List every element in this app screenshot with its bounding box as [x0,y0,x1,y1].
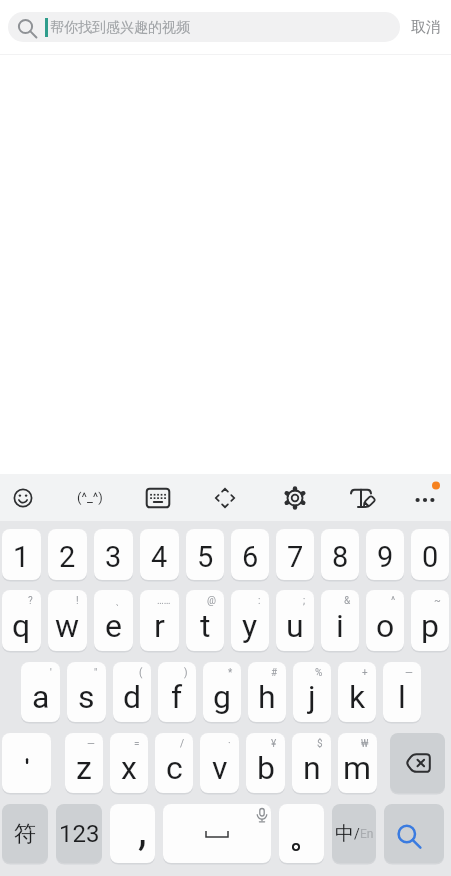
staticText: % [315,667,323,679]
button[interactable] [275,474,315,521]
button[interactable]: i [321,590,359,651]
staticText: 9 [377,540,394,574]
button[interactable]: k [338,662,376,722]
button[interactable]: , [110,804,155,863]
button[interactable]: 5 [186,529,224,580]
staticText: h [258,678,276,716]
button[interactable]: 中 [332,804,376,863]
button[interactable] [279,804,324,863]
button[interactable] [3,474,43,521]
button[interactable]: 4 [140,529,179,580]
button[interactable]: p [411,590,449,651]
staticText: ( [139,667,143,679]
staticText: 0 [422,540,439,574]
button[interactable] [138,474,178,521]
button[interactable]: s [67,662,106,722]
button[interactable] [205,474,245,521]
button[interactable]: w [48,590,87,651]
button[interactable] [403,474,447,521]
button[interactable]: e [94,590,133,651]
button[interactable]: a [21,662,60,722]
staticText: 、 [115,595,125,608]
button[interactable]: z [65,733,103,793]
button[interactable]: 3 [94,529,133,580]
staticText: g [213,678,231,716]
button[interactable]: h [248,662,286,722]
staticText: y [242,607,258,645]
staticText: ! [76,595,79,607]
staticText: s [78,678,95,716]
button[interactable] [2,733,51,793]
button[interactable]: 7 [276,529,314,580]
staticText: a [32,678,50,716]
staticText: x [121,749,137,787]
staticText: 符 [14,820,36,848]
button[interactable]: 帮你找到感兴趣的视频 [8,12,400,42]
staticText: u [286,607,304,645]
button[interactable]: c [155,733,193,793]
button[interactable]: 取消 [400,0,451,54]
staticText: e [105,607,122,645]
button[interactable]: g [203,662,241,722]
button[interactable]: y [231,590,269,651]
button[interactable] [390,733,445,793]
button[interactable]: 123 [56,804,102,863]
button[interactable]: 1 [2,529,41,580]
staticText: l [398,678,406,716]
staticText: p [421,607,439,645]
button[interactable]: o [366,590,404,651]
button[interactable] [163,804,271,863]
staticText: ₩ [361,738,369,750]
staticText: r [154,607,165,645]
button[interactable]: l [383,662,421,722]
staticText: $ [317,738,323,750]
staticText: — [405,667,413,679]
button[interactable]: 8 [321,529,359,580]
staticText: ¥ [271,738,277,750]
staticText: ' [50,667,52,679]
staticText: k [349,678,366,716]
staticText: ; [303,595,306,607]
staticText: En [360,827,374,841]
staticText: i [336,607,344,645]
button[interactable]: m [338,733,377,793]
button[interactable]: n [292,733,331,793]
staticText: 123 [59,820,100,848]
button[interactable]: x [110,733,148,793]
staticText: / [180,738,185,750]
staticText: * [228,667,233,679]
staticText: v [212,749,228,787]
staticText: 8 [332,540,349,574]
button[interactable]: j [293,662,331,722]
button[interactable]: 2 [48,529,87,580]
staticText: ) [184,667,188,679]
staticText: 1 [13,540,30,574]
button[interactable]: b [246,733,285,793]
staticText: # [271,667,278,679]
button[interactable] [384,804,444,863]
button[interactable]: q [2,590,41,651]
staticText: …… [157,595,171,607]
button[interactable]: t [186,590,224,651]
staticText: 5 [197,540,214,574]
staticText: & [344,595,351,607]
button[interactable]: u [276,590,314,651]
button[interactable]: 0 [411,529,449,580]
button[interactable]: f [158,662,196,722]
button[interactable]: 9 [366,529,404,580]
staticText: : [258,595,261,607]
staticText: c [166,749,183,787]
staticText: ^ [391,595,396,607]
button[interactable]: 6 [231,529,269,580]
button[interactable]: d [113,662,151,722]
button[interactable]: 符 [2,804,48,863]
staticText: ~ [434,595,441,607]
button[interactable]: (^_^) [68,474,112,521]
button[interactable]: r [140,590,179,651]
staticText: " [94,667,98,679]
button[interactable]: v [200,733,239,793]
staticText: b [257,749,275,787]
staticText: z [76,749,92,787]
button[interactable] [343,474,383,521]
staticText: 取消 [411,18,441,37]
